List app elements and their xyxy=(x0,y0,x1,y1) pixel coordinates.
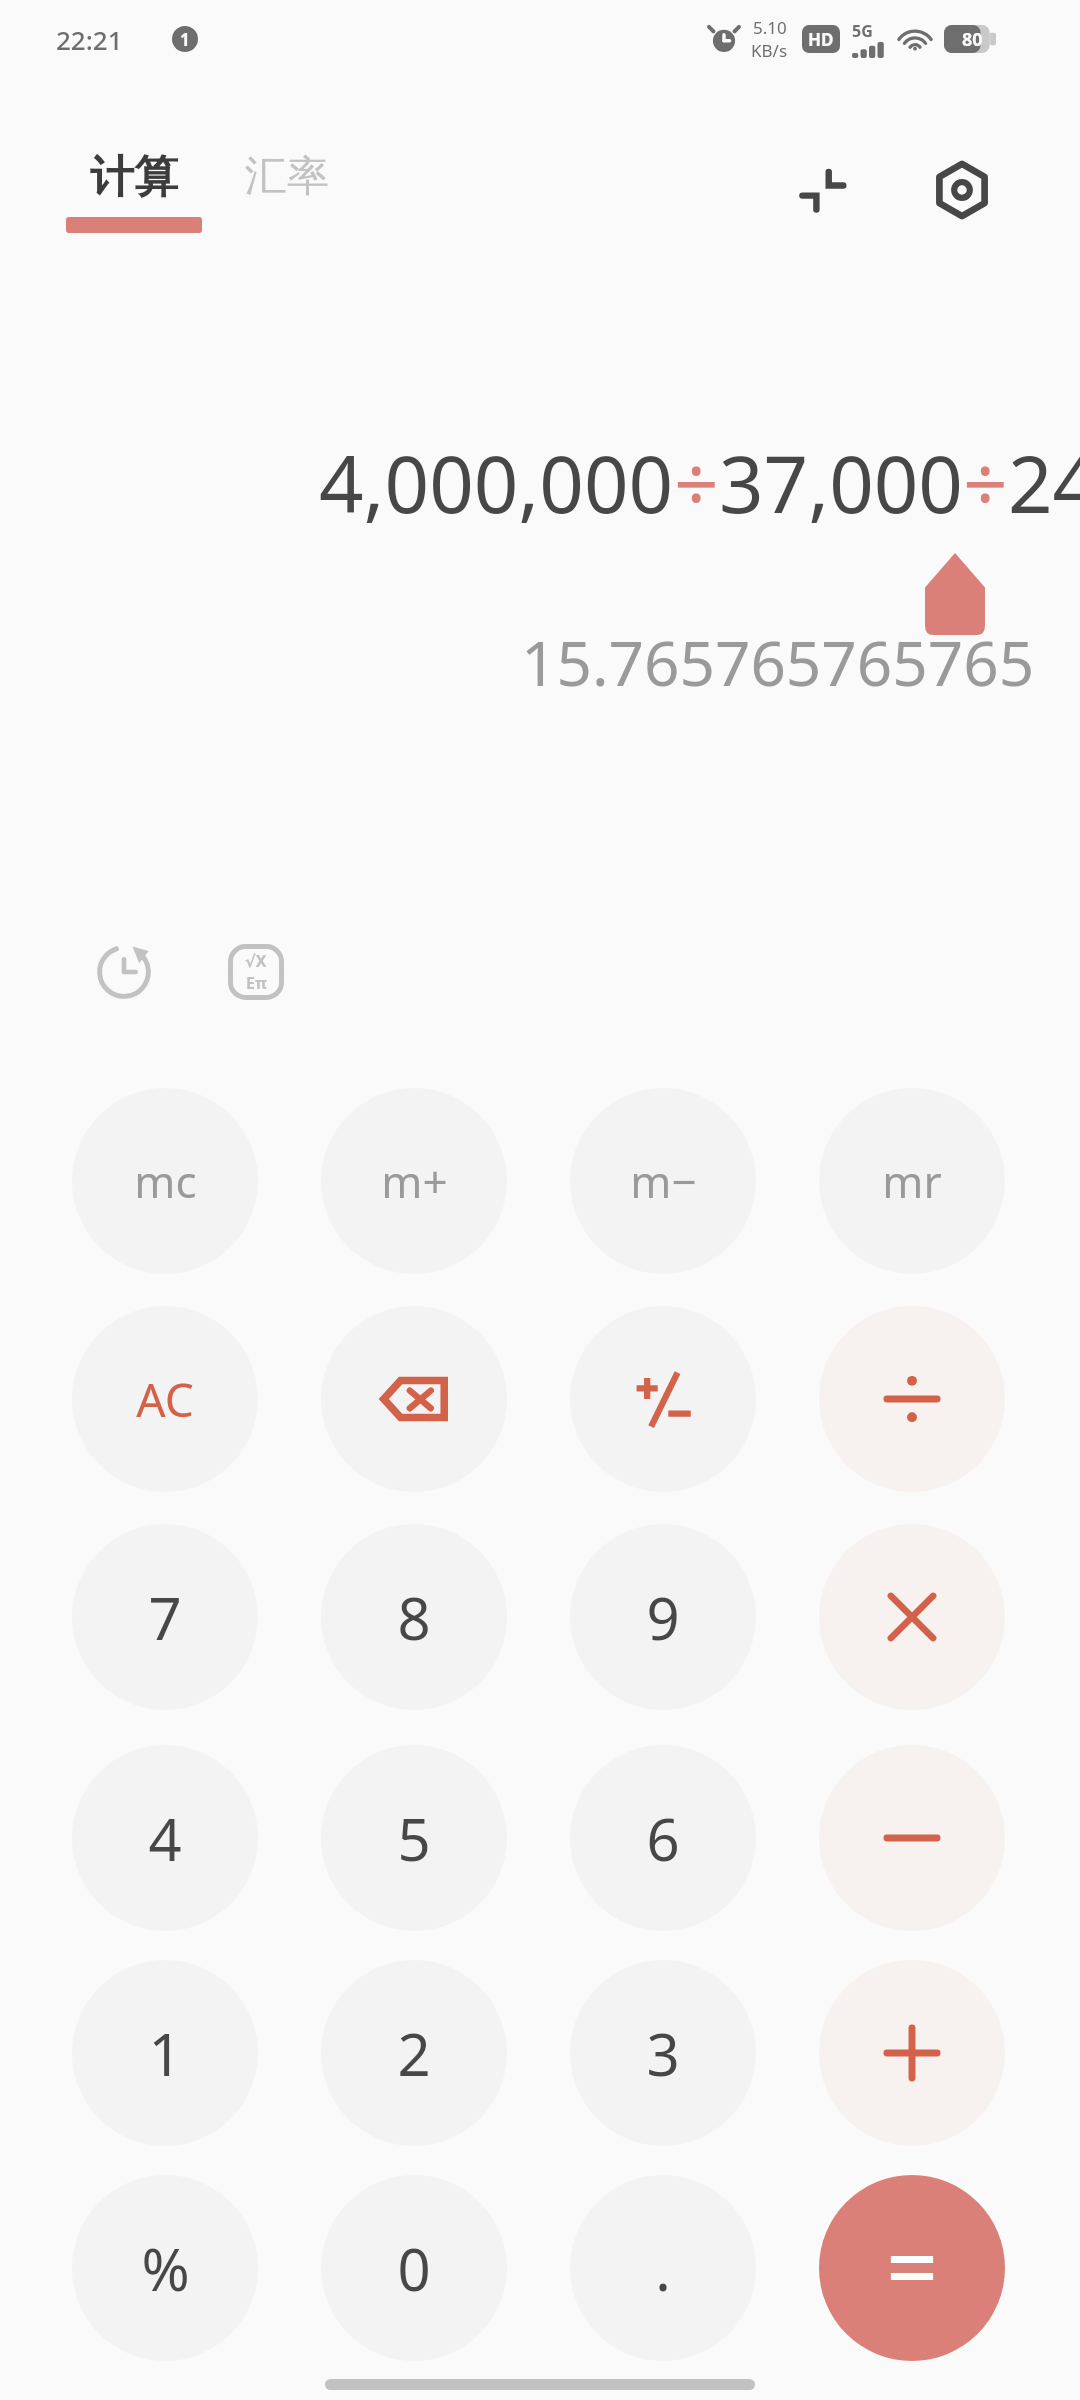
button[interactable]: History xyxy=(82,930,166,1014)
button[interactable]: Backspace xyxy=(321,1306,507,1492)
button[interactable]: Minus xyxy=(819,1745,1005,1931)
button[interactable]: 0 xyxy=(321,2175,507,2361)
staticText: 5.10 xyxy=(753,16,787,39)
staticText: 8 xyxy=(397,1578,431,1657)
button[interactable]: mc xyxy=(72,1088,258,1274)
button[interactable]: 4 xyxy=(72,1745,258,1931)
staticText: 5G xyxy=(852,20,873,42)
button[interactable]: Plus xyxy=(819,1960,1005,2146)
staticText: 9 xyxy=(646,1578,680,1657)
staticText: 80 xyxy=(962,27,983,52)
button[interactable]: % xyxy=(72,2175,258,2361)
staticText: % xyxy=(141,2229,190,2308)
staticText: 计算 xyxy=(90,150,178,205)
button[interactable]: 5 xyxy=(321,1745,507,1931)
staticText: 22:21 xyxy=(56,22,123,57)
button[interactable]: m+ xyxy=(321,1088,507,1274)
staticText: AC xyxy=(136,1368,194,1431)
staticText: √X xyxy=(245,950,267,972)
staticText: 15.765765765765 xyxy=(521,620,1035,704)
staticText: ÷ xyxy=(674,430,719,536)
button[interactable]: Multiply xyxy=(819,1524,1005,1710)
button[interactable]: 2 xyxy=(321,1960,507,2146)
button[interactable]: AC xyxy=(72,1306,258,1492)
button[interactable]: 6 xyxy=(570,1745,756,1931)
button[interactable]: Divide xyxy=(819,1306,1005,1492)
button[interactable]: 9 xyxy=(570,1524,756,1710)
staticText: m+ xyxy=(381,1151,448,1211)
staticText: 37,000 xyxy=(719,430,963,536)
button[interactable]: Equals xyxy=(819,2175,1005,2361)
button[interactable]: Plus minus xyxy=(570,1306,756,1492)
staticText: 2 xyxy=(397,2014,431,2093)
staticText: . xyxy=(655,2229,671,2308)
staticText: KB/s xyxy=(751,39,788,62)
staticText: Eπ xyxy=(246,972,267,994)
staticText: 3 xyxy=(646,2014,680,2093)
staticText: ÷ xyxy=(963,430,1008,536)
staticText: mr xyxy=(882,1151,942,1211)
staticText: 汇率 xyxy=(245,150,329,203)
staticText: 6 xyxy=(646,1799,680,1878)
staticText: 1 xyxy=(180,28,190,51)
button[interactable]: 1 xyxy=(72,1960,258,2146)
staticText: mc xyxy=(134,1151,197,1211)
staticText: 4 xyxy=(148,1799,182,1878)
button[interactable]: 汇率 xyxy=(245,150,329,203)
button[interactable]: Settings xyxy=(920,148,1004,232)
button[interactable]: 7 xyxy=(72,1524,258,1710)
button[interactable]: m− xyxy=(570,1088,756,1274)
button[interactable]: 8 xyxy=(321,1524,507,1710)
staticText: 24 xyxy=(1008,430,1080,536)
staticText: 0 xyxy=(397,2229,431,2308)
staticText: HD xyxy=(808,28,834,51)
button[interactable]: Expand xyxy=(780,148,864,232)
staticText: 4,000,000 xyxy=(319,430,674,536)
button[interactable]: 计算 xyxy=(66,150,202,233)
button[interactable]: . xyxy=(570,2175,756,2361)
staticText: 7 xyxy=(148,1578,182,1657)
button[interactable]: Scientific xyxy=(214,930,298,1014)
button[interactable]: mr xyxy=(819,1088,1005,1274)
staticText: m− xyxy=(630,1151,697,1211)
button[interactable]: 3 xyxy=(570,1960,756,2146)
staticText: 5 xyxy=(397,1799,431,1878)
staticText: 1 xyxy=(148,2014,182,2093)
